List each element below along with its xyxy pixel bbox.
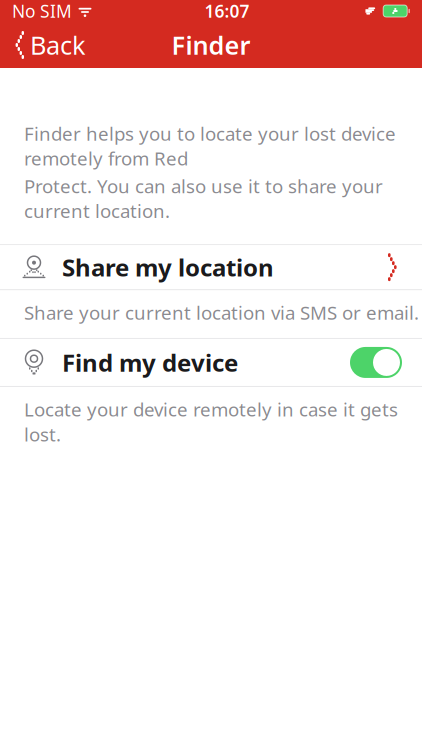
staticText: Finder: [171, 28, 250, 62]
staticText: Share your current location via SMS or e…: [24, 300, 419, 325]
button[interactable]: Back: [0, 22, 100, 68]
staticText: Locate your device remotely in case it g…: [24, 397, 398, 447]
staticText: Finder helps you to locate your lost dev…: [24, 121, 396, 171]
button[interactable]: Find my device toggle: [350, 347, 402, 378]
staticText: Share my location: [62, 251, 274, 283]
staticText: No SIM: [12, 0, 72, 22]
staticText: Protect. You can also use it to share yo…: [24, 174, 383, 223]
button[interactable]: Share my location: [0, 245, 422, 289]
staticText: Back: [30, 28, 86, 62]
button[interactable]: Find my device: [0, 339, 422, 386]
staticText: 16:07: [205, 0, 250, 22]
staticText: Find my device: [62, 346, 238, 378]
